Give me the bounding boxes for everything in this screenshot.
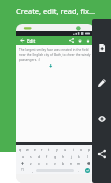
staticText: r [41, 147, 43, 152]
button[interactable]: p [85, 146, 93, 152]
button[interactable]: Enter [85, 168, 90, 173]
staticText: h [62, 154, 65, 159]
staticText: d [38, 154, 41, 159]
staticText: Create, edit, read, fix... [16, 6, 95, 16]
button[interactable]: k [75, 153, 83, 159]
button[interactable]: . [74, 167, 82, 173]
staticText: b [62, 161, 65, 166]
button[interactable]: Share [68, 37, 75, 44]
staticText: z [30, 161, 32, 166]
staticText: j [71, 154, 72, 159]
staticText: s [30, 154, 32, 159]
button[interactable]: r [38, 146, 45, 152]
button[interactable]: a [19, 153, 27, 159]
button[interactable]: m [75, 160, 83, 166]
button[interactable]: w [24, 146, 31, 152]
staticText: , [32, 168, 33, 173]
button[interactable]: y [53, 146, 61, 152]
staticText: t [48, 147, 50, 152]
button[interactable]: h [59, 153, 67, 159]
button[interactable]: l [83, 153, 91, 159]
button[interactable]: g [51, 153, 59, 159]
button[interactable]: z [27, 160, 35, 166]
staticText: m [77, 161, 81, 166]
button[interactable]: b [59, 160, 67, 166]
button[interactable]: x [35, 160, 43, 166]
button[interactable]: j [67, 153, 75, 159]
staticText: The largest smiley face was created in t… [19, 48, 91, 62]
staticText: n [70, 161, 73, 166]
staticText: ?1 [21, 168, 25, 172]
button[interactable]: c [43, 160, 51, 166]
button[interactable]: Shift [17, 160, 27, 166]
staticText: q [19, 147, 22, 152]
staticText: o [80, 147, 83, 152]
button[interactable]: New document [95, 41, 109, 55]
button[interactable]: e [31, 146, 38, 152]
button[interactable]: Backspace [83, 160, 93, 166]
staticText: . [78, 168, 79, 173]
staticText: Edit [27, 38, 36, 44]
button[interactable]: o [77, 146, 85, 152]
button[interactable]: s [27, 153, 35, 159]
button[interactable]: Lock [84, 37, 91, 44]
button[interactable]: , [28, 167, 36, 173]
staticText: l [87, 154, 88, 159]
staticText: a [22, 154, 24, 159]
button[interactable]: f [43, 153, 51, 159]
staticText: k [78, 154, 80, 159]
staticText: p [88, 147, 91, 152]
button[interactable]: t [45, 146, 53, 152]
staticText: v [54, 161, 56, 166]
button[interactable]: d [35, 153, 43, 159]
button[interactable]: Edit [95, 76, 109, 90]
button[interactable]: i [69, 146, 77, 152]
staticText: g [54, 154, 57, 159]
button[interactable]: u [61, 146, 69, 152]
staticText: u [64, 147, 67, 152]
button[interactable]: n [67, 160, 75, 166]
staticText: c [46, 161, 48, 166]
button[interactable]: v [51, 160, 59, 166]
staticText: f [46, 154, 48, 159]
button[interactable]: Share [95, 147, 109, 161]
staticText: i [73, 147, 74, 152]
button[interactable]: q [17, 146, 24, 152]
staticText: x [38, 161, 40, 166]
staticText: e [34, 147, 36, 152]
button[interactable]: View [95, 112, 109, 126]
staticText: w [26, 147, 29, 152]
button[interactable]: Save [76, 37, 83, 44]
button[interactable]: Symbols [17, 167, 28, 173]
staticText: y [56, 147, 58, 152]
button[interactable]: Back [19, 37, 26, 44]
